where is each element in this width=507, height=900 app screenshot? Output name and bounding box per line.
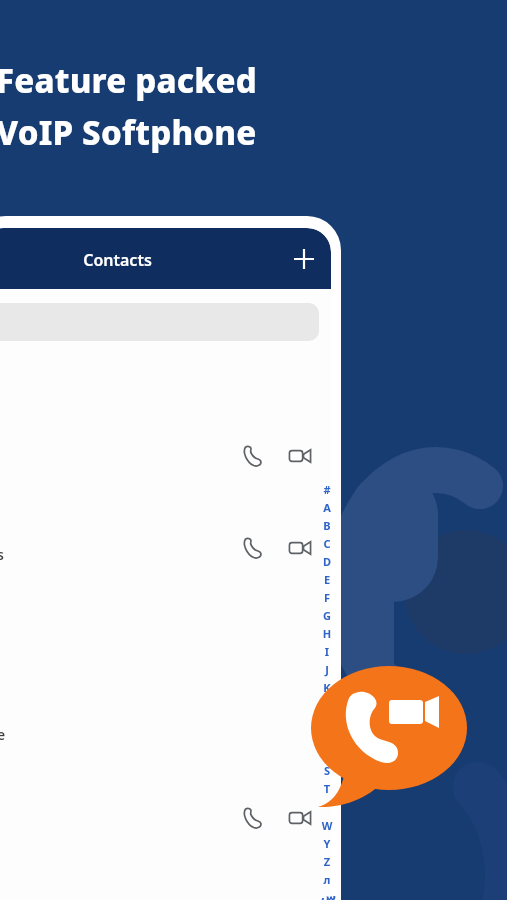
staticText: E — [321, 572, 333, 587]
button[interactable]: Audio call — [232, 798, 272, 838]
staticText: S — [321, 763, 333, 778]
button[interactable]: Audio call — [232, 528, 272, 568]
staticText: Feature packed — [0, 58, 258, 103]
staticText: T — [321, 781, 333, 796]
staticText: H — [321, 626, 333, 641]
staticText: A — [321, 500, 333, 515]
staticText: C — [321, 536, 333, 551]
staticText: F — [321, 590, 333, 605]
button[interactable]: New call — [309, 662, 469, 810]
staticText: л — [321, 872, 333, 887]
staticText: s — [0, 545, 4, 564]
staticText: B — [321, 518, 333, 533]
button[interactable]: Video call — [280, 436, 320, 476]
staticText: W — [321, 818, 333, 833]
button[interactable]: Video call — [280, 798, 320, 838]
staticText: س — [321, 890, 333, 900]
staticText: # — [321, 482, 333, 497]
staticText: Z — [321, 854, 333, 869]
staticText: VoIP Softphone — [0, 110, 257, 155]
staticText: K — [321, 680, 333, 695]
staticText: e — [0, 725, 6, 744]
button[interactable]: Audio call — [232, 436, 272, 476]
button[interactable]: Add contact — [285, 240, 323, 278]
staticText: J — [321, 662, 333, 677]
staticText: Contacts — [83, 249, 152, 271]
staticText: Y — [321, 836, 333, 851]
staticText: G — [321, 608, 333, 623]
staticText: I — [321, 644, 333, 659]
button[interactable]: Video call — [280, 528, 320, 568]
staticText: D — [321, 554, 333, 569]
